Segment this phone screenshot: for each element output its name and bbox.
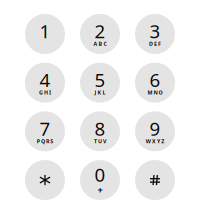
staticText: JKL bbox=[94, 89, 106, 96]
button[interactable]: 3 DEF bbox=[135, 14, 175, 54]
staticText: 5 bbox=[94, 67, 105, 92]
staticText: 8 bbox=[94, 116, 105, 141]
button[interactable]: 6 MNO bbox=[135, 63, 175, 103]
staticText: PQRS bbox=[37, 138, 53, 145]
button[interactable]: star bbox=[25, 160, 65, 200]
staticText: 0 bbox=[94, 162, 105, 187]
button[interactable]: 9 WXYZ bbox=[135, 111, 175, 151]
staticText: 6 bbox=[149, 67, 160, 92]
staticText: + bbox=[97, 184, 102, 196]
staticText: 9 bbox=[149, 116, 160, 141]
button[interactable]: 1 bbox=[25, 14, 65, 54]
button[interactable]: 0 + bbox=[80, 160, 120, 200]
staticText: TUV bbox=[94, 138, 106, 145]
staticText: MNO bbox=[147, 89, 163, 96]
staticText: 1 bbox=[39, 19, 50, 43]
button[interactable]: 2 ABC bbox=[80, 14, 120, 54]
button[interactable]: 5 JKL bbox=[80, 63, 120, 103]
button[interactable]: 7 PQRS bbox=[25, 111, 65, 151]
button[interactable]: pound bbox=[135, 160, 175, 200]
staticText: DEF bbox=[149, 40, 161, 47]
staticText: 2 bbox=[94, 19, 105, 43]
staticText: 4 bbox=[39, 67, 50, 92]
button[interactable]: 8 TUV bbox=[80, 111, 120, 151]
staticText: ABC bbox=[93, 40, 107, 47]
staticText: WXYZ bbox=[146, 138, 164, 145]
button[interactable]: 4 GHI bbox=[25, 63, 65, 103]
staticText: GHI bbox=[39, 89, 51, 96]
staticText: 3 bbox=[149, 19, 160, 43]
staticText: 7 bbox=[39, 116, 50, 141]
